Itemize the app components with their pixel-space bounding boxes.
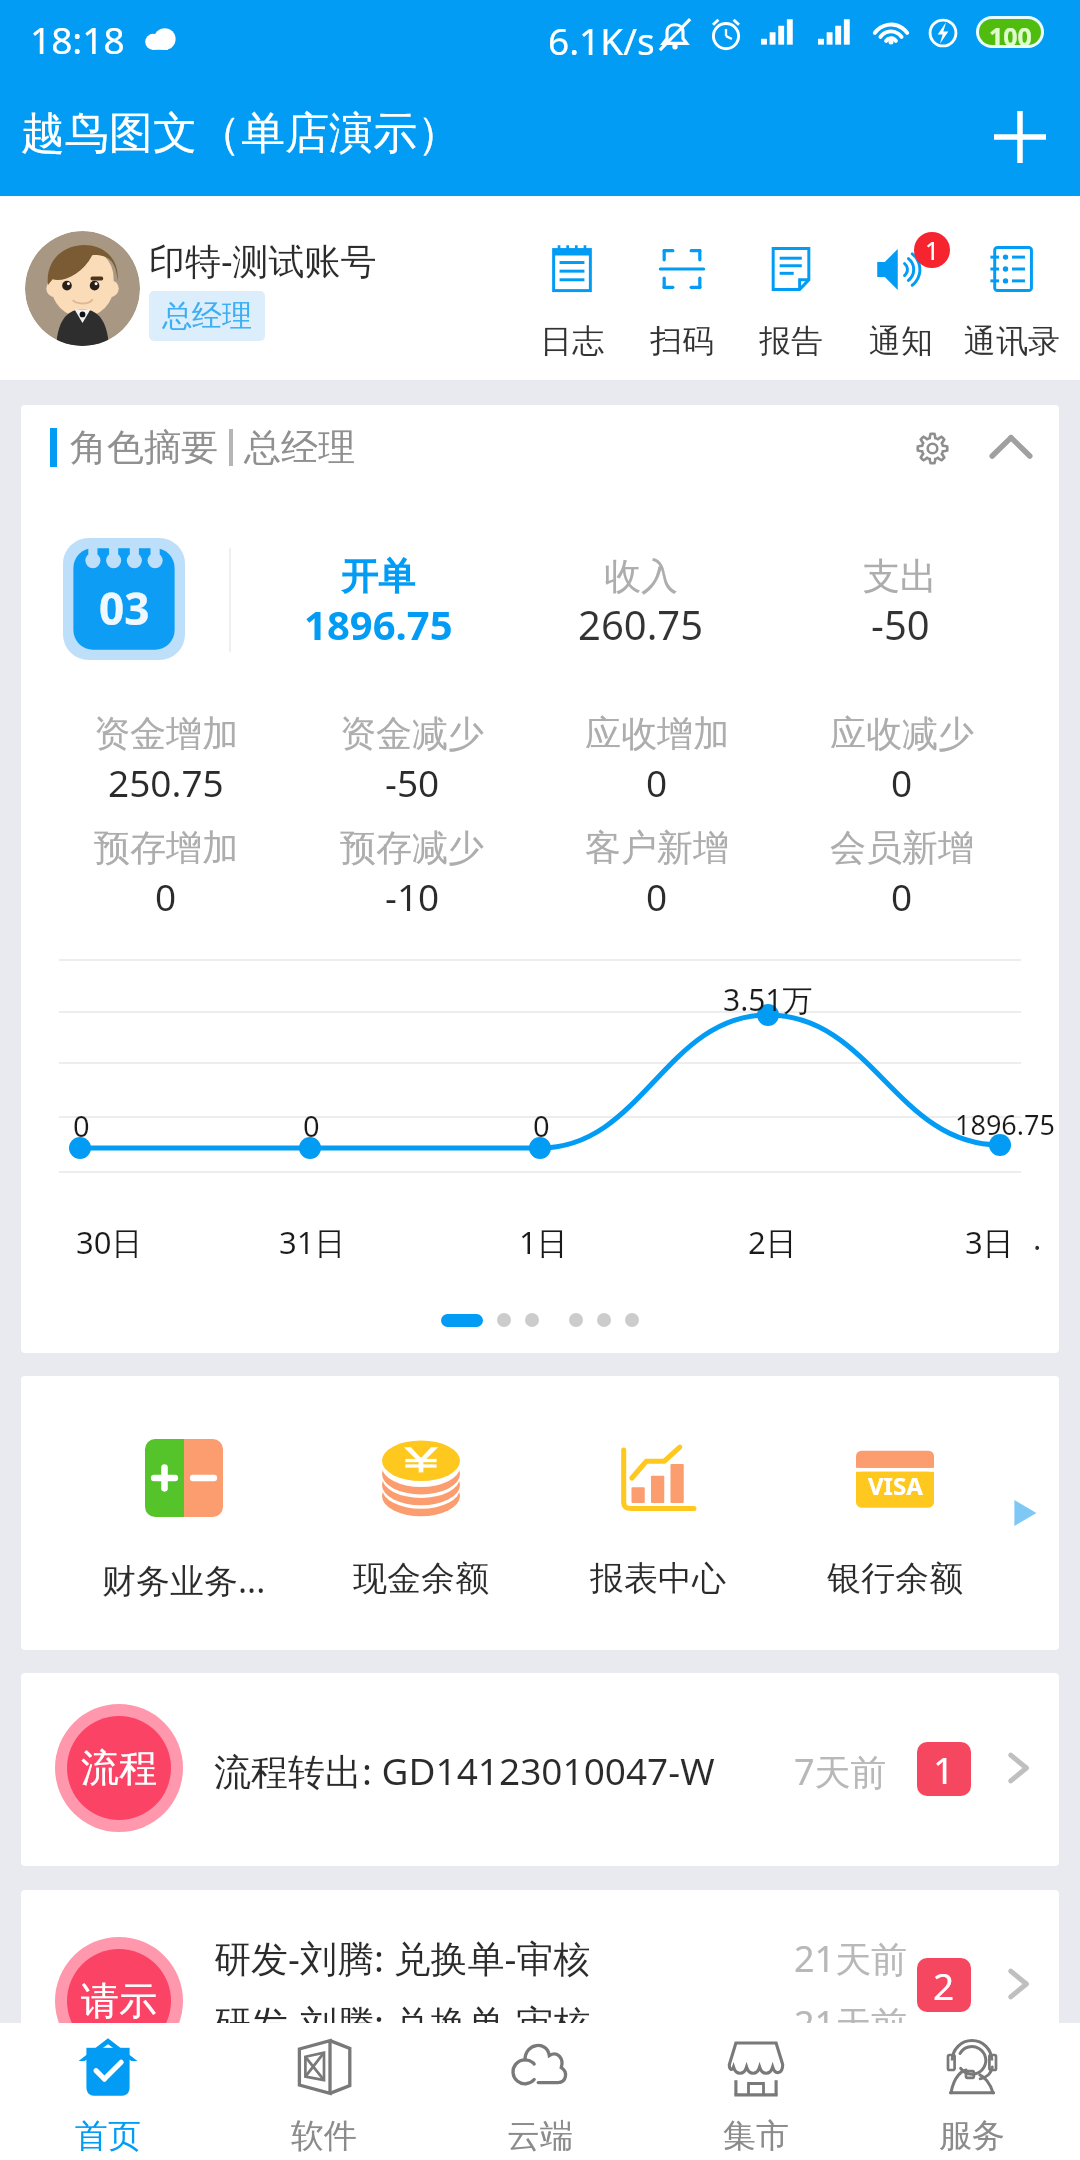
staticText: 银行余额	[827, 1557, 963, 1600]
button[interactable]: 支出	[790, 550, 1010, 660]
button[interactable]: 云端	[432, 2023, 648, 2160]
staticText: 2	[933, 1960, 955, 2010]
staticText: VISA	[868, 1469, 923, 1502]
staticText: 会员新增	[830, 825, 974, 870]
staticText: 通讯录	[964, 321, 1060, 361]
button[interactable]: 报表中心	[558, 1431, 758, 1621]
button[interactable]: 开单	[268, 550, 488, 660]
button[interactable]: 财务业务...	[84, 1431, 284, 1621]
staticText: 角色摘要	[70, 424, 218, 471]
staticText: 1	[925, 233, 940, 267]
staticText: 报表中心	[590, 1557, 726, 1600]
staticText: 0	[646, 757, 668, 807]
button[interactable]: 服务	[864, 2023, 1080, 2160]
staticText: 应收减少	[830, 711, 974, 756]
button[interactable]: 通讯录	[952, 196, 1072, 380]
button[interactable]: Collapse	[976, 413, 1046, 483]
staticText: 03	[99, 578, 150, 638]
button[interactable]: 1	[841, 196, 961, 380]
button[interactable]: 首页	[0, 2023, 216, 2160]
staticText: 总经理	[162, 297, 252, 335]
staticText: 总经理	[244, 424, 355, 471]
button[interactable]: Settings	[897, 413, 967, 483]
staticText: 1896.75	[955, 1106, 1055, 1143]
staticText: 资金增加	[94, 711, 238, 756]
staticText: 越鸟图文（单店演示）	[21, 106, 461, 161]
button[interactable]: 报告	[731, 196, 851, 380]
button[interactable]: 请示	[21, 1890, 1059, 2150]
staticText: 30日	[76, 1221, 143, 1263]
staticText: 1896.75	[304, 597, 453, 651]
staticText: 0	[533, 1106, 550, 1145]
staticText: 集市	[723, 2115, 789, 2157]
staticText: 云端	[507, 2115, 573, 2157]
staticText: 0	[646, 871, 668, 921]
staticText: 6.1K/s	[548, 15, 655, 65]
staticText: 报告	[759, 321, 823, 361]
staticText: -50	[385, 757, 440, 807]
staticText: 2日	[748, 1221, 797, 1263]
staticText: 预存增加	[94, 825, 238, 870]
staticText: 收入	[604, 553, 678, 600]
staticText: 0	[891, 757, 913, 807]
button[interactable]: Profile avatar	[25, 231, 140, 346]
staticText: 支出	[863, 553, 937, 600]
staticText: 财务业务...	[102, 1557, 266, 1603]
staticText: 0	[155, 871, 177, 921]
staticText: 3日	[965, 1221, 1014, 1263]
button[interactable]: 软件	[216, 2023, 432, 2160]
staticText: 7天前	[794, 1747, 887, 1796]
staticText: 开单	[341, 553, 415, 600]
staticText: 研发-刘腾: 兑换单-审核	[214, 1997, 591, 2048]
staticText: 通知	[869, 321, 933, 361]
staticText: 首页	[75, 2115, 141, 2157]
staticText: 服务	[939, 2115, 1005, 2157]
staticText: 流程	[81, 1744, 157, 1792]
button[interactable]: 收入	[531, 550, 751, 660]
staticText: 现金余额	[353, 1557, 489, 1600]
staticText: 资金减少	[340, 711, 484, 756]
staticText: -50	[871, 597, 930, 651]
staticText: 0	[891, 871, 913, 921]
staticText: 260.75	[578, 597, 704, 651]
button[interactable]: 流程	[21, 1673, 1059, 1866]
staticText: 扫码	[650, 321, 714, 361]
staticText: 21天前	[794, 1934, 908, 1983]
staticText: 0	[73, 1106, 90, 1145]
staticText: 100	[989, 19, 1032, 45]
staticText: 客户新增	[585, 825, 729, 870]
staticText: 250.75	[108, 757, 224, 807]
staticText: 1日	[519, 1221, 568, 1263]
staticText: 日志	[540, 321, 604, 361]
staticText: 印特-测试账号	[149, 236, 377, 285]
staticText: 软件	[291, 2115, 357, 2157]
staticText: 1	[933, 1744, 955, 1794]
button[interactable]: 现金余额	[321, 1431, 521, 1621]
button[interactable]: 日志	[512, 196, 632, 380]
staticText: 31日	[279, 1221, 346, 1263]
staticText: 预存减少	[340, 825, 484, 870]
staticText: .	[1033, 1217, 1042, 1259]
staticText: 流程转出: GD14123010047-W	[214, 1745, 715, 1796]
staticText: 0	[303, 1106, 320, 1145]
staticText: 21天前	[794, 1999, 908, 2048]
button[interactable]: Add	[980, 97, 1060, 177]
staticText: 请示	[81, 1977, 157, 2025]
button[interactable]: VISA	[795, 1431, 995, 1621]
staticText: 应收增加	[585, 711, 729, 756]
button[interactable]: 集市	[648, 2023, 864, 2160]
staticText: 18:18	[30, 14, 125, 64]
button[interactable]: 扫码	[622, 196, 742, 380]
staticText: 研发-刘腾: 兑换单-审核	[214, 1932, 591, 1983]
staticText: 3.51万	[723, 979, 813, 1020]
staticText: -10	[385, 871, 440, 921]
